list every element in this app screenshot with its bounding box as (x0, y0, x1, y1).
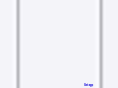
staticText: Get app (84, 83, 94, 87)
button[interactable]: Get app (84, 81, 94, 88)
staticText: Get app (84, 83, 94, 87)
